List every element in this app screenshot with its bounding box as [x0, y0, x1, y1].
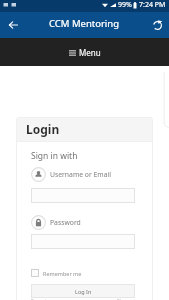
staticText: Remember me [43, 270, 82, 277]
staticText: Log In [75, 288, 92, 295]
button[interactable]: Forgot [31, 298, 47, 300]
staticText: 99% [118, 0, 132, 10]
staticText: Sign in with [31, 150, 78, 162]
button[interactable]: Menu [0, 38, 169, 66]
staticText: CCM Mentoring [49, 17, 120, 30]
staticText: Password [50, 218, 81, 227]
button[interactable]: Remember me [31, 269, 82, 277]
staticText: Menu [79, 47, 101, 58]
button[interactable]: Sign up [117, 298, 135, 300]
button[interactable]: Refresh [148, 16, 166, 34]
button[interactable]: Back [4, 16, 22, 34]
staticText: 7:24 PM [139, 0, 166, 10]
staticText: Username or Email [50, 170, 111, 179]
button[interactable]: Log In [31, 284, 135, 298]
staticText: Login [26, 121, 60, 137]
